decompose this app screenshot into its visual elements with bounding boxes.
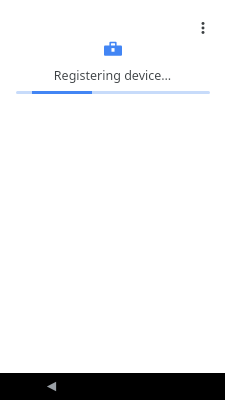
- staticText: Registering device…: [0, 67, 225, 84]
- button[interactable]: More options: [185, 10, 221, 46]
- button[interactable]: Back: [33, 373, 69, 400]
